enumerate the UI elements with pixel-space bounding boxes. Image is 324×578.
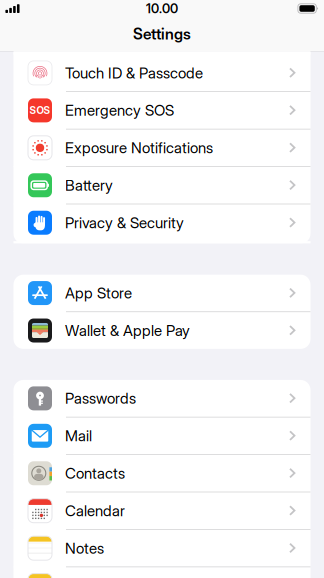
button[interactable]: Privacy & Security — [13, 204, 310, 241]
button[interactable]: Touch ID & Passcode — [13, 54, 310, 91]
button[interactable]: Contacts — [13, 455, 310, 492]
button[interactable]: Battery — [13, 167, 310, 204]
button[interactable]: Notes — [13, 530, 310, 567]
staticText: Privacy & Security — [65, 214, 184, 232]
staticText: Calendar — [65, 502, 125, 520]
staticText: Passwords — [65, 389, 136, 407]
staticText: 10.00 — [146, 1, 178, 16]
staticText: Touch ID & Passcode — [65, 64, 203, 82]
staticText: Wallet & Apple Pay — [65, 321, 190, 340]
button[interactable]: Exposure Notifications — [13, 129, 310, 166]
button[interactable]: Calendar — [13, 492, 310, 529]
staticText: Contacts — [65, 464, 125, 482]
button[interactable]: SOS — [13, 92, 310, 129]
staticText: App Store — [65, 284, 132, 302]
staticText: Exposure Notifications — [65, 139, 213, 157]
staticText: Notes — [65, 539, 104, 557]
button[interactable]: Mail — [13, 417, 310, 454]
button[interactable]: Wallet & Apple Pay — [13, 312, 310, 349]
staticText: Settings — [133, 25, 191, 43]
button[interactable]: Reminders — [13, 567, 310, 578]
staticText: Emergency SOS — [65, 101, 174, 119]
staticText: SOS — [29, 104, 50, 116]
staticText: Battery — [65, 176, 113, 194]
staticText: Mail — [65, 427, 92, 445]
button[interactable]: App Store — [13, 275, 310, 311]
button[interactable]: Passwords — [13, 380, 310, 417]
